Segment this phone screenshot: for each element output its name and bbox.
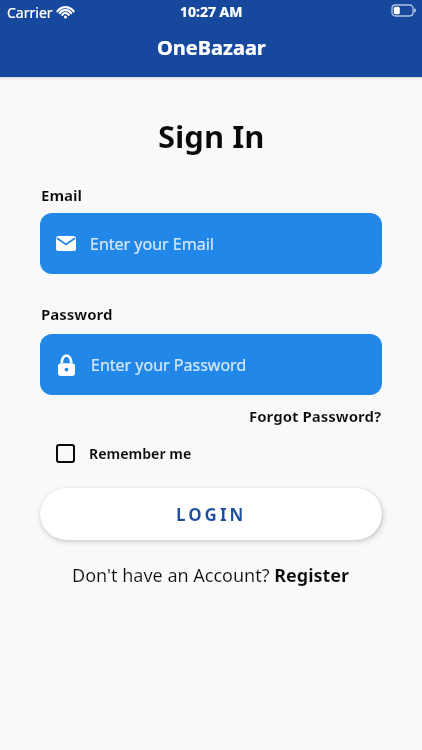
button[interactable]: Remember me [56,444,192,463]
staticText: Remember me [89,444,192,463]
staticText: OneBazaar [157,34,266,61]
staticText: Email [41,185,82,205]
staticText: Carrier [7,3,53,22]
staticText: Enter your Email [90,233,214,255]
staticText: Enter your Password [91,354,247,376]
staticText: 10:27 AM [180,2,243,21]
button[interactable]: Forgot Password? [249,406,382,426]
button[interactable]: Don't have an Account? Register [72,563,350,588]
staticText: LOGIN [176,503,247,526]
button[interactable]: Enter your Password [40,334,382,395]
button[interactable]: LOGIN [40,488,382,540]
staticText: Sign In [158,115,265,157]
staticText: Password [41,304,113,324]
button[interactable]: Enter your Email [40,213,382,274]
